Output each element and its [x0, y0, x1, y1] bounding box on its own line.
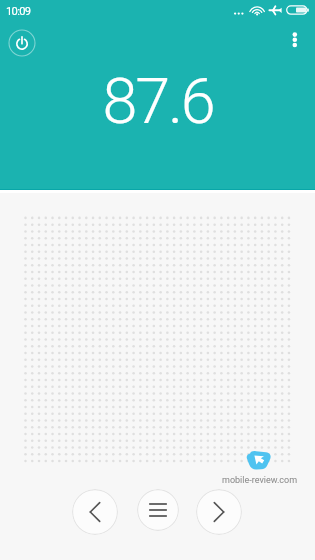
- button[interactable]: Power: [7, 28, 37, 58]
- button[interactable]: Previous station: [72, 489, 118, 535]
- staticText: mobile-review.com: [222, 475, 298, 486]
- staticText: 10:09: [6, 5, 31, 18]
- button[interactable]: More options: [278, 22, 312, 56]
- button[interactable]: Station list: [137, 489, 179, 531]
- button[interactable]: Next station: [196, 489, 242, 535]
- staticText: 87.6: [102, 65, 214, 139]
